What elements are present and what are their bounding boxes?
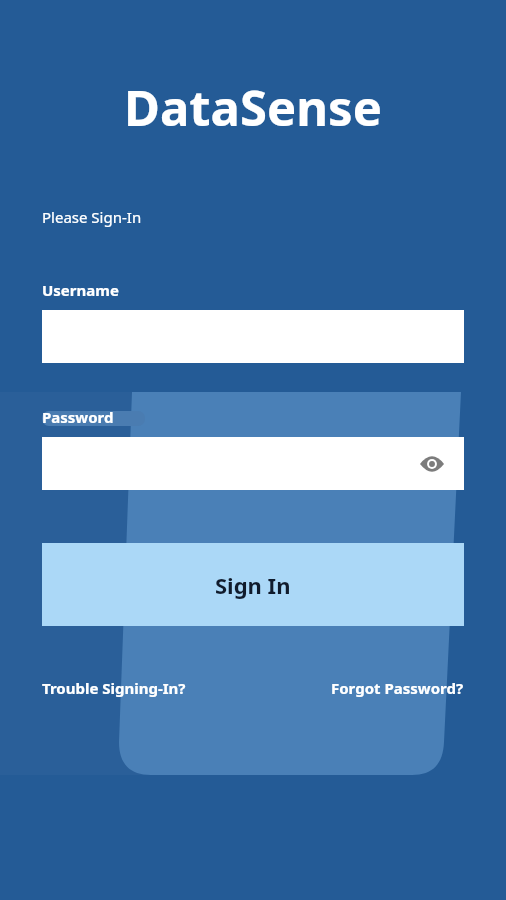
button[interactable]: Show password [411, 443, 453, 485]
button[interactable]: Trouble Signing-In? [42, 678, 186, 698]
staticText: Forgot Password? [331, 678, 464, 698]
staticText: Password [42, 407, 114, 427]
staticText: Please Sign-In [42, 207, 142, 227]
staticText: DataSense [0, 74, 506, 141]
staticText: Username [42, 280, 119, 300]
button[interactable]: Sign In [42, 543, 464, 626]
staticText: Sign In [215, 570, 291, 600]
staticText: Trouble Signing-In? [42, 678, 186, 698]
button[interactable]: Forgot Password? [331, 678, 464, 698]
button[interactable]: Password input field [42, 437, 464, 490]
